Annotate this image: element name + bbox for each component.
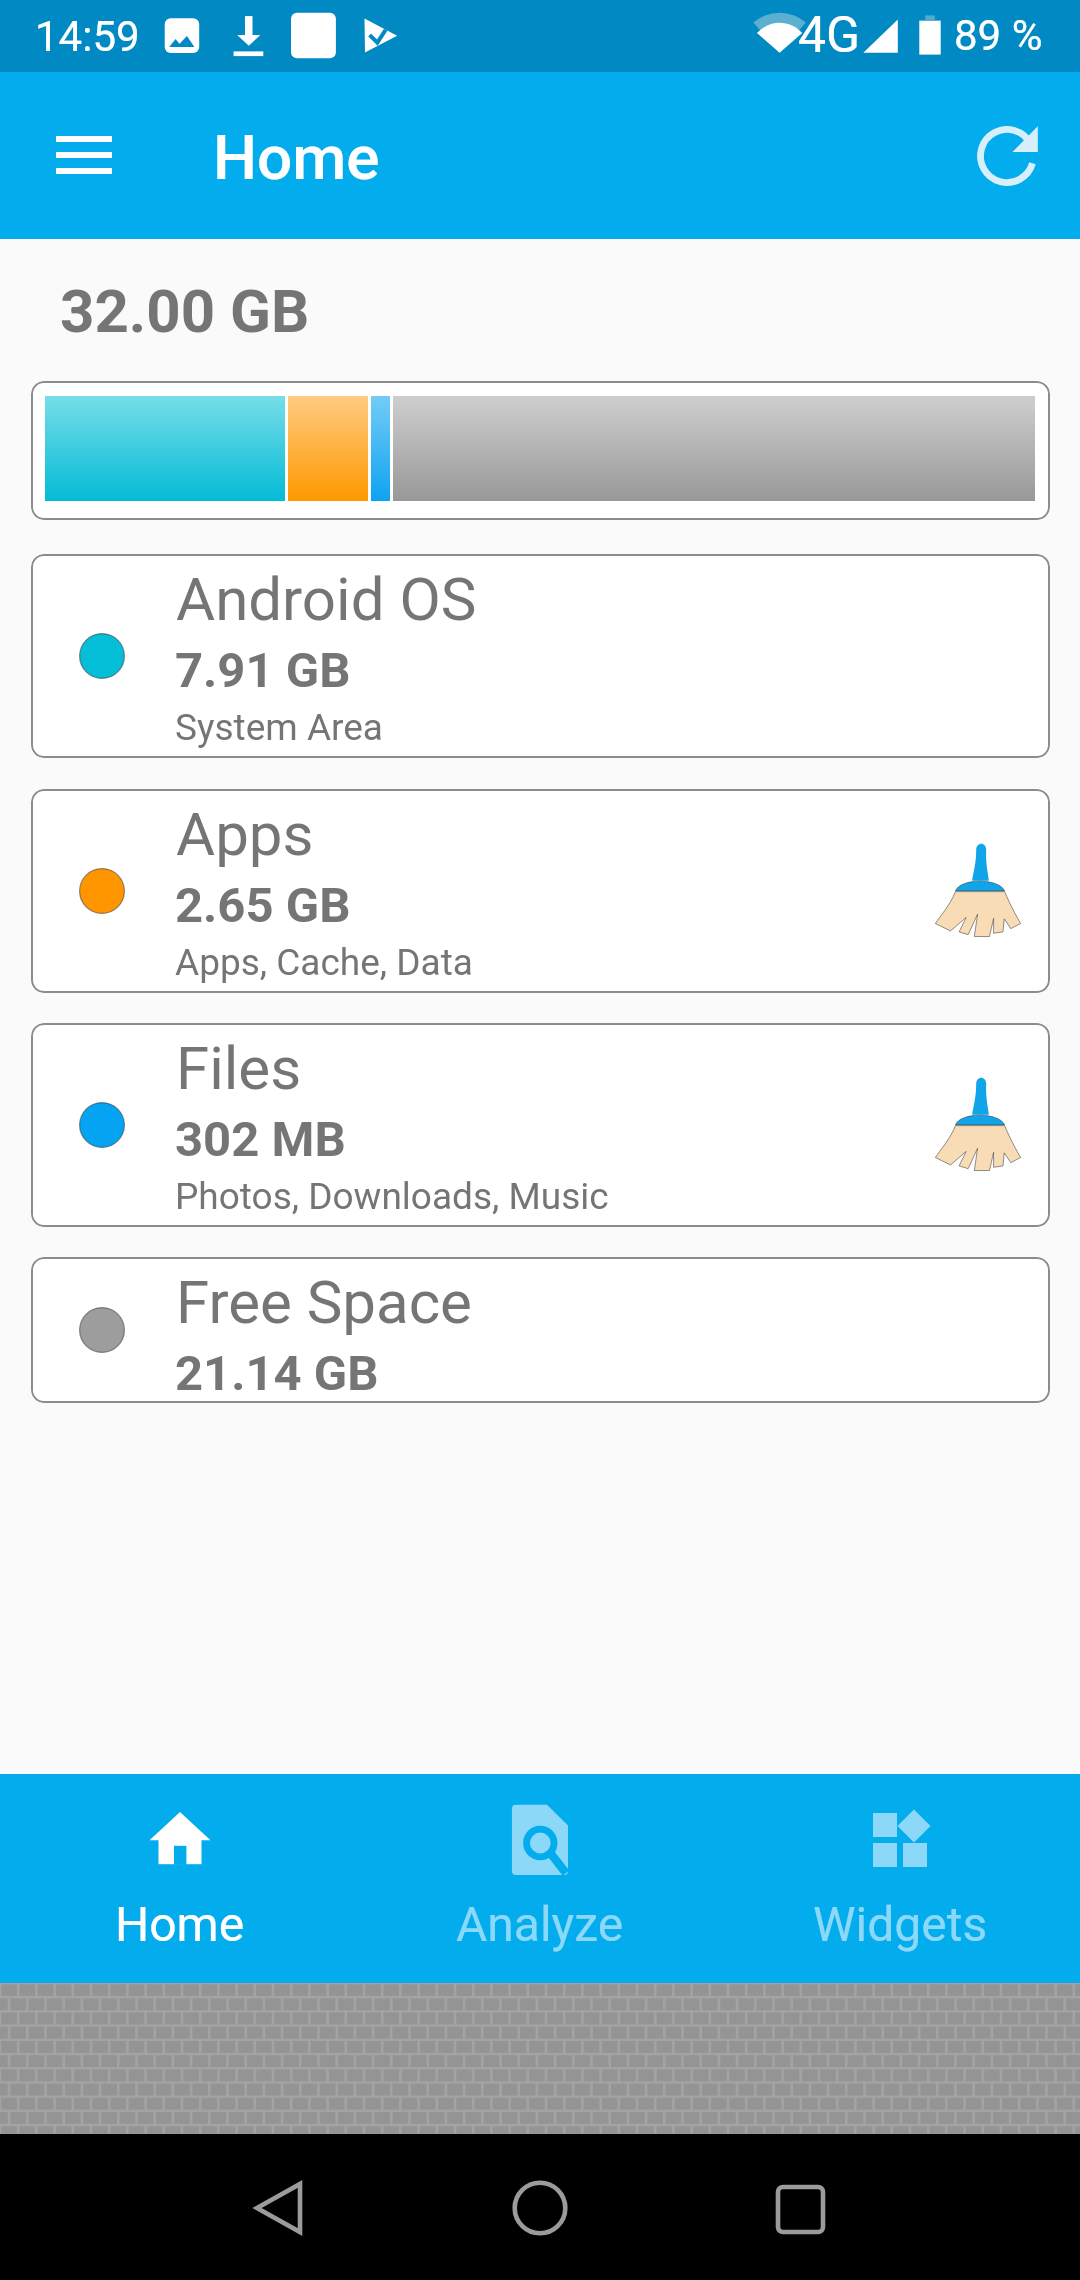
button[interactable]: Analyze <box>360 1774 720 1983</box>
staticText: Apps <box>176 799 314 869</box>
button[interactable]: Widgets <box>720 1774 1080 1983</box>
staticText: Android OS <box>176 564 477 634</box>
staticText: Apps, Cache, Data <box>175 941 473 984</box>
staticText: 89 % <box>954 11 1043 60</box>
staticText: Home <box>213 121 380 194</box>
staticText: 302 MB <box>175 1111 346 1168</box>
staticText: 32.00 GB <box>60 276 310 346</box>
button[interactable]: Android OS <box>31 554 1050 758</box>
staticText: Free Space <box>176 1267 472 1337</box>
staticText: 14:59 <box>35 12 140 61</box>
staticText: System Area <box>175 706 383 749</box>
staticText: Widgets <box>813 1896 988 1952</box>
staticText: 7.91 GB <box>175 642 351 699</box>
button[interactable]: Apps <box>31 789 1050 993</box>
button[interactable]: Open navigation drawer <box>28 100 140 212</box>
button[interactable]: Free Space <box>31 1257 1050 1403</box>
staticText: 4G <box>798 6 861 65</box>
staticText: Analyze <box>456 1896 624 1952</box>
button[interactable]: Recent apps <box>750 2156 850 2256</box>
staticText: 21.14 GB <box>175 1345 379 1402</box>
staticText: Home <box>115 1896 245 1952</box>
button[interactable]: Home <box>490 2156 590 2256</box>
staticText: 2.65 GB <box>175 877 351 934</box>
staticText: Photos, Downloads, Music <box>175 1175 609 1218</box>
staticText: Files <box>176 1033 302 1103</box>
button[interactable]: Refresh <box>957 106 1057 206</box>
button[interactable]: Back <box>230 2156 330 2256</box>
button[interactable]: Home <box>0 1774 360 1983</box>
button[interactable]: Files <box>31 1023 1050 1227</box>
